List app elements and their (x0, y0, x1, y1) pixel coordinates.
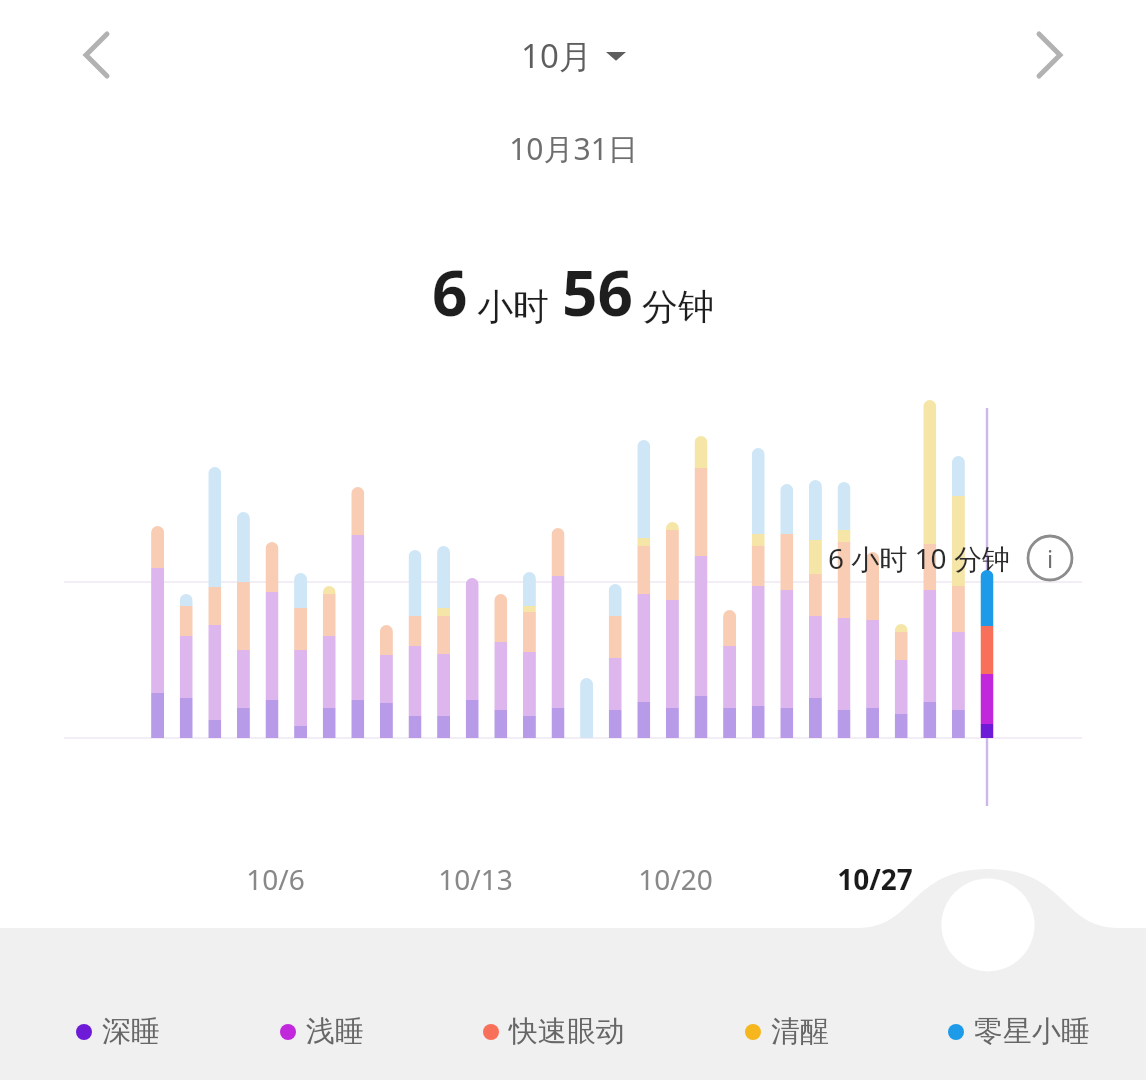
staticText: 10/6 (246, 860, 305, 898)
button[interactable]: 快速眼动 (479, 1009, 629, 1054)
button[interactable]: 10月 (509, 27, 638, 84)
staticText: 小时 (477, 284, 549, 329)
staticText: 10月 (521, 33, 592, 78)
button[interactable]: Next month (1012, 17, 1088, 93)
staticText: 6 小时 10 分钟 (828, 539, 1010, 577)
button[interactable]: 10/20 (610, 860, 740, 898)
staticText: 快速眼动 (509, 1013, 625, 1050)
staticText: 清醒 (771, 1013, 829, 1050)
staticText: 10/13 (438, 860, 513, 898)
staticText: 分钟 (642, 284, 714, 329)
staticText: 10/20 (638, 860, 713, 898)
staticText: 深睡 (102, 1013, 160, 1050)
staticText: 10/27 (837, 860, 913, 898)
button[interactable]: 10/27 (810, 860, 940, 898)
staticText: 浅睡 (306, 1013, 364, 1050)
button[interactable]: 零星小睡 (944, 1009, 1094, 1054)
button[interactable]: 深睡 (72, 1009, 164, 1054)
button[interactable]: Add sleep record (940, 878, 1036, 974)
button[interactable]: Previous month (58, 17, 134, 93)
staticText: 10月31日 (509, 128, 638, 169)
button[interactable]: 清醒 (741, 1009, 833, 1054)
button[interactable]: 浅睡 (276, 1009, 368, 1054)
button[interactable]: 10/13 (410, 860, 540, 898)
staticText: 56 (562, 250, 633, 334)
button[interactable]: Info (1026, 534, 1074, 582)
button[interactable]: 10/6 (210, 860, 340, 898)
staticText: 零星小睡 (974, 1013, 1090, 1050)
staticText: i (1047, 542, 1054, 575)
staticText: 6 (432, 250, 468, 334)
